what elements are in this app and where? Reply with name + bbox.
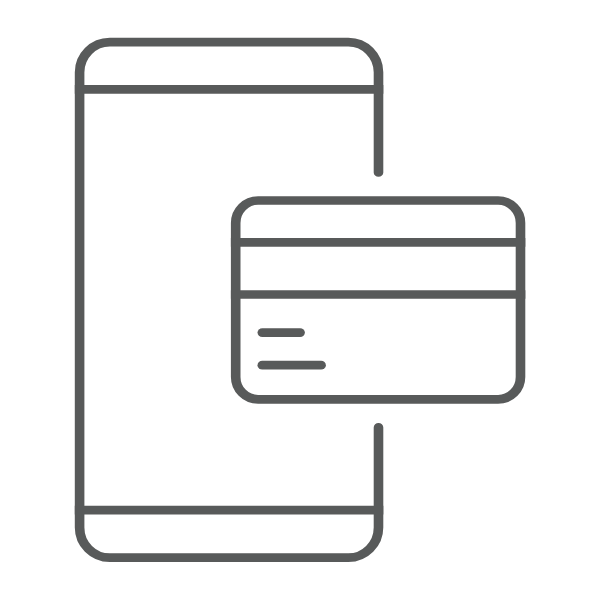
button[interactable]: Mobile payment with credit card xyxy=(0,0,600,600)
